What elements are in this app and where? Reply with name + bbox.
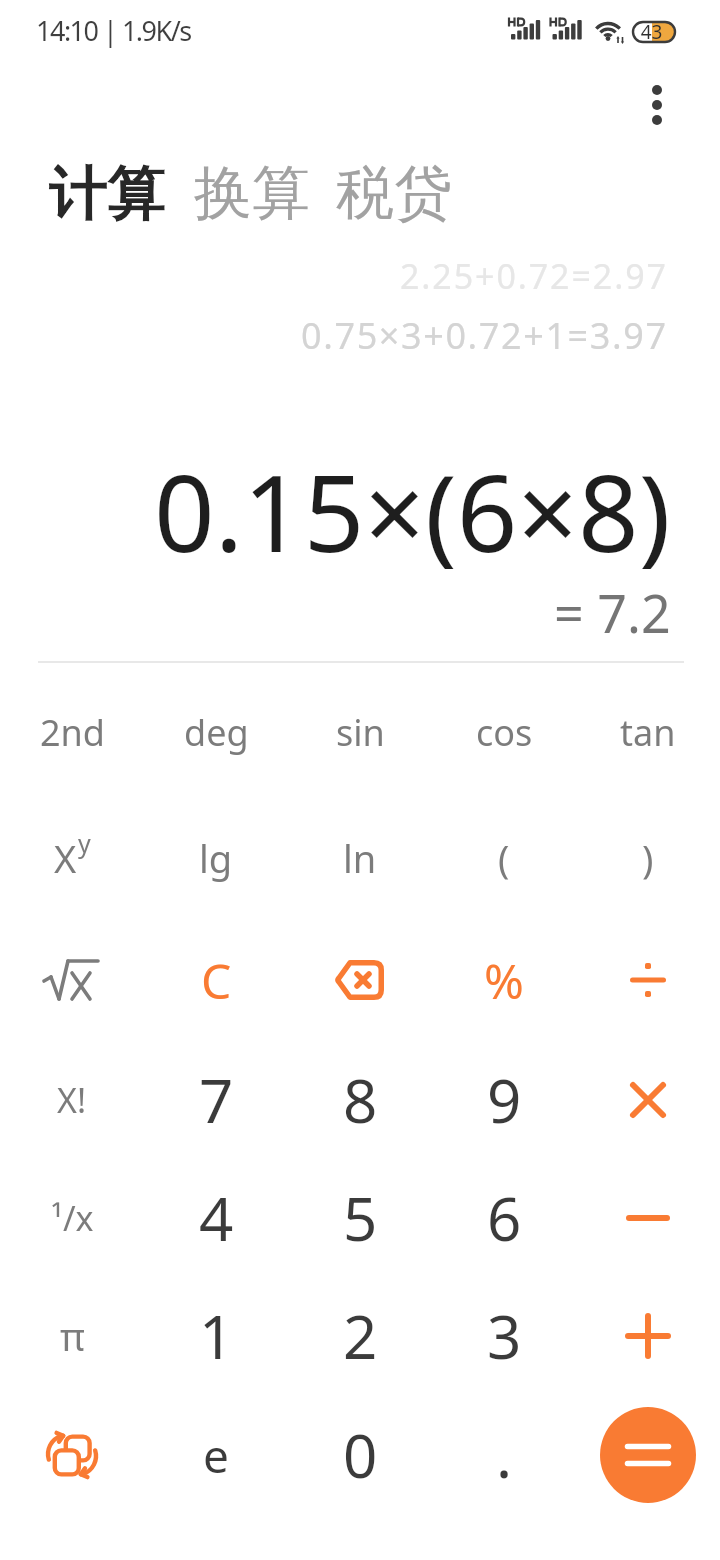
button[interactable]: X! — [12, 1048, 132, 1152]
button[interactable] — [600, 1407, 696, 1503]
staticText: e — [203, 1424, 229, 1487]
button[interactable]: π — [12, 1284, 132, 1388]
staticText: 计算 — [50, 157, 166, 230]
button[interactable]: C — [156, 928, 276, 1032]
staticText: 43 — [633, 19, 670, 45]
button[interactable]: tan — [588, 680, 708, 784]
staticText: 6 — [487, 1177, 522, 1259]
staticText: 0 — [343, 1414, 378, 1496]
button[interactable]: 3 — [444, 1284, 564, 1388]
button[interactable] — [588, 1166, 708, 1270]
button[interactable]: 8 — [300, 1048, 420, 1152]
button[interactable]: 4 — [156, 1166, 276, 1270]
staticText: C — [201, 948, 232, 1013]
staticText: 税贷 — [336, 157, 452, 230]
button[interactable]: 2 — [300, 1284, 420, 1388]
staticText: cos — [476, 708, 533, 757]
button[interactable]: 9 — [444, 1048, 564, 1152]
button[interactable]: ¹/x — [12, 1166, 132, 1270]
staticText: 5 — [343, 1177, 378, 1259]
staticText: lg — [199, 832, 233, 884]
button[interactable]: e — [156, 1403, 276, 1507]
button[interactable]: 0 — [300, 1403, 420, 1507]
staticText: 2 — [343, 1295, 378, 1377]
staticText: π — [60, 1310, 85, 1362]
button[interactable]: 5 — [300, 1166, 420, 1270]
button[interactable] — [12, 1403, 132, 1507]
button[interactable]: X — [12, 806, 132, 910]
button[interactable] — [12, 928, 132, 1032]
staticText: deg — [184, 708, 249, 757]
button[interactable] — [635, 80, 679, 130]
staticText: 2.25+0.72=2.97 — [400, 253, 668, 299]
staticText: ) — [642, 832, 654, 884]
button[interactable]: 1 — [156, 1284, 276, 1388]
staticText: 7 — [199, 1059, 234, 1141]
staticText: 14:10 | 1.9K/s — [36, 12, 191, 49]
button[interactable] — [588, 1284, 708, 1388]
staticText: ( — [498, 832, 510, 884]
staticText: 8 — [343, 1059, 378, 1141]
button[interactable] — [300, 928, 420, 1032]
button[interactable]: . — [444, 1403, 564, 1507]
button[interactable]: lg — [156, 806, 276, 910]
staticText: = 7.2 — [554, 577, 671, 648]
button[interactable]: sin — [300, 680, 420, 784]
button[interactable]: % — [444, 928, 564, 1032]
button[interactable]: 计算 — [50, 157, 166, 230]
staticText: 4 — [199, 1177, 234, 1259]
staticText: 0.15×(6×8) — [154, 439, 671, 583]
staticText: X — [54, 832, 77, 884]
button[interactable]: 7 — [156, 1048, 276, 1152]
button[interactable]: deg — [156, 680, 276, 784]
staticText: y — [78, 826, 91, 860]
staticText: 换算 — [194, 157, 310, 230]
button[interactable]: ) — [588, 806, 708, 910]
button[interactable]: 税贷 — [336, 157, 452, 230]
button[interactable] — [588, 928, 708, 1032]
staticText: X! — [57, 1077, 87, 1123]
staticText: 2nd — [40, 708, 105, 757]
button[interactable]: ln — [300, 806, 420, 910]
staticText: 0.75×3+0.72+1=3.97 — [301, 311, 668, 360]
staticText: 1 — [199, 1295, 234, 1377]
staticText: ¹/x — [51, 1195, 94, 1241]
button[interactable]: 2nd — [12, 680, 132, 784]
staticText: sin — [336, 708, 385, 757]
staticText: 9 — [487, 1059, 522, 1141]
button[interactable]: ( — [444, 806, 564, 910]
staticText: % — [484, 948, 524, 1013]
staticText: 计算 — [50, 157, 166, 230]
button[interactable]: cos — [444, 680, 564, 784]
staticText: tan — [620, 708, 676, 757]
button[interactable] — [588, 1048, 708, 1152]
staticText: 3 — [487, 1295, 522, 1377]
staticText: . — [496, 1414, 513, 1496]
button[interactable]: 6 — [444, 1166, 564, 1270]
button[interactable]: 换算 — [194, 157, 310, 230]
staticText: ln — [343, 832, 377, 884]
